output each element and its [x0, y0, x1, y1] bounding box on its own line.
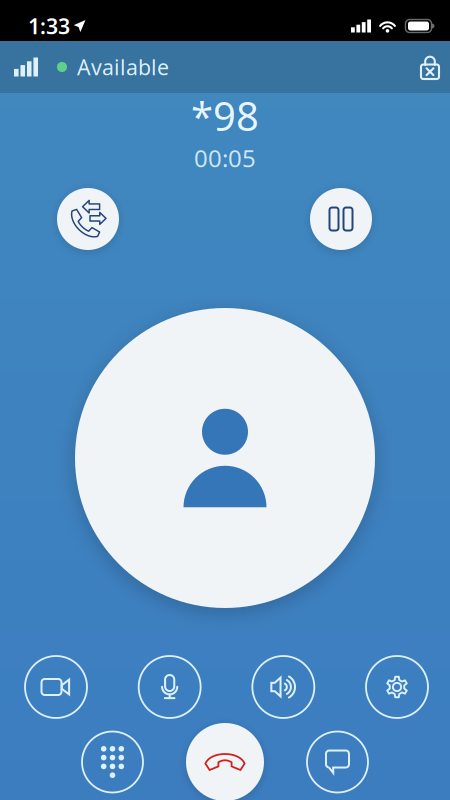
staticText: 1:33: [28, 12, 70, 40]
button[interactable]: Keypad: [82, 731, 143, 792]
staticText: Available: [77, 53, 169, 81]
button[interactable]: Hold call: [310, 188, 372, 250]
staticText: 00:05: [194, 142, 256, 174]
button[interactable]: Settings: [366, 656, 428, 718]
button[interactable]: End call: [186, 723, 264, 800]
button[interactable]: Transfer call: [57, 188, 119, 250]
button[interactable]: Mute: [139, 656, 201, 718]
button[interactable]: Video: [25, 656, 87, 718]
staticText: *98: [191, 89, 259, 142]
button[interactable]: Message: [307, 731, 368, 792]
button[interactable]: Speaker: [252, 656, 314, 718]
